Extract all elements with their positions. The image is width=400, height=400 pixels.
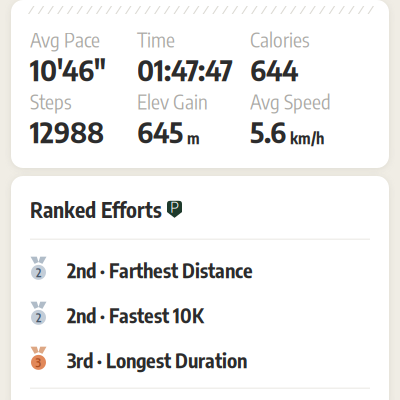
staticText: 5.6 — [250, 113, 286, 150]
staticText: 645 — [137, 113, 183, 150]
staticText: Ranked Efforts — [30, 196, 162, 223]
staticText: Calories — [250, 27, 310, 52]
staticText: 3 — [35, 355, 41, 370]
staticText: m — [187, 128, 200, 148]
button[interactable]: 3 — [30, 338, 370, 383]
staticText: Avg Speed — [250, 89, 331, 114]
staticText: Steps — [30, 89, 72, 114]
staticText: 644 — [250, 51, 298, 88]
staticText: P — [170, 199, 179, 216]
staticText: 2nd · Fastest 10K — [67, 303, 204, 328]
button[interactable]: 2 — [30, 248, 370, 293]
staticText: 3rd · Longest Duration — [67, 348, 247, 373]
staticText: 2nd · Farthest Distance — [67, 258, 253, 283]
staticText: Time — [137, 27, 175, 52]
staticText: 2 — [36, 265, 41, 280]
staticText: Avg Pace — [30, 27, 100, 52]
staticText: 12988 — [30, 113, 104, 150]
staticText: 01:47:47 — [137, 51, 233, 88]
staticText: 2 — [36, 310, 41, 325]
staticText: km/h — [290, 128, 324, 148]
staticText: Elev Gain — [137, 89, 208, 114]
button[interactable]: 2 — [30, 293, 370, 338]
staticText: 10'46" — [30, 51, 106, 88]
